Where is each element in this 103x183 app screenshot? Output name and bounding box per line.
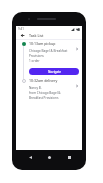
button[interactable]: Navigate	[29, 68, 79, 75]
staticText: Nancy B. from Chicago Bagel & Breakfast …	[29, 86, 61, 100]
button[interactable]: Home	[43, 151, 55, 163]
staticText: 9:41	[18, 27, 24, 31]
staticText: Task List	[29, 33, 44, 38]
button[interactable]: Back	[24, 151, 36, 163]
button[interactable]: Back	[18, 31, 27, 40]
staticText: Chicago Bagel & Breakfast Provisions 1 o…	[29, 49, 68, 63]
button[interactable]: 10:13am pickup	[16, 41, 82, 79]
button[interactable]: 10:32am delivery	[16, 78, 82, 100]
staticText: 10:13am pickup	[29, 41, 56, 46]
staticText: 10:32am delivery	[29, 78, 58, 83]
button[interactable]: Recent apps	[63, 151, 75, 163]
staticText: Navigate	[48, 70, 61, 74]
